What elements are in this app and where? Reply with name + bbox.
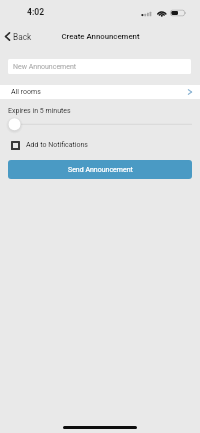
staticText: Back [13, 32, 32, 42]
button[interactable]: Expiry duration slider [0, 116, 200, 133]
staticText: Add to Notifications [26, 141, 88, 149]
staticText: New Announcement [13, 63, 77, 71]
button[interactable]: All rooms [0, 85, 200, 99]
staticText: All rooms [11, 88, 41, 96]
staticText: 4:02 [27, 7, 45, 17]
button[interactable]: Add to Notifications [11, 138, 88, 152]
button[interactable]: New Announcement [8, 59, 191, 74]
staticText: Create Announcement [61, 32, 140, 41]
staticText: Expires in 5 minutes [8, 107, 71, 115]
button[interactable]: Back [5, 27, 32, 46]
button[interactable]: Send Announcement [8, 160, 192, 179]
staticText: Send Announcement [68, 166, 133, 174]
